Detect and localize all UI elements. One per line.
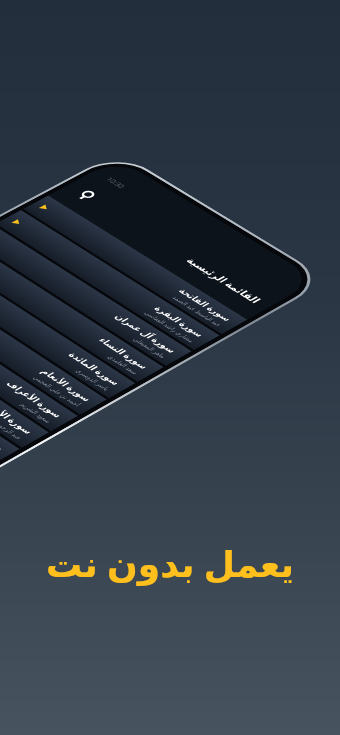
button[interactable]: سورة النساء [0, 240, 164, 382]
staticText: سورة الفاتحة [176, 286, 236, 323]
staticText: سعود الشريم [18, 401, 54, 424]
staticText: عبد الرحمن السديس [0, 407, 25, 441]
staticText: سعد الغامدي [106, 354, 140, 375]
staticText: سورة التوبة [0, 417, 8, 453]
staticText: القائمة الرئيسية [183, 255, 265, 306]
staticText: أحمد بن علي العجمي [31, 374, 83, 408]
staticText: سورة المائدة [66, 350, 124, 387]
staticText: سورة الأنعام [38, 367, 95, 403]
staticText: ياسر الدوسري [74, 367, 112, 392]
staticText: سورة البقرة [151, 304, 208, 339]
staticText: عبد الباسط عبد الصمد [170, 294, 224, 328]
button[interactable]: سورة الأنفال [0, 300, 49, 448]
button[interactable]: سورة البقرة [0, 210, 220, 350]
button[interactable]: سورة آل عمران [0, 225, 192, 366]
staticText: يعمل بدون نت [0, 539, 340, 588]
button[interactable]: سورة الأنعام [0, 270, 107, 415]
button[interactable]: سورة الفاتحة [23, 195, 247, 334]
staticText: سورة الأعراف [3, 379, 67, 420]
staticText: سورة النساء [96, 335, 152, 371]
staticText: سورة آل عمران [112, 312, 180, 355]
staticText: 10:30 [104, 176, 128, 190]
button[interactable]: سورة التوبة [0, 316, 19, 464]
staticText: ماهر المعيقلي [131, 336, 169, 359]
button[interactable]: سورة الأعراف [0, 285, 78, 431]
button[interactable]: سورة المائدة [0, 255, 135, 398]
staticText: مشاري راشد العفاسي [143, 310, 197, 343]
button[interactable]: Search [68, 185, 104, 205]
staticText: سورة الأنفال [0, 397, 37, 436]
